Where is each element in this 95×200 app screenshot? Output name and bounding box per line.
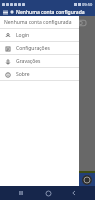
staticText: Nenhuma conta configurada bbox=[4, 19, 72, 26]
button[interactable]: Recents bbox=[16, 188, 26, 198]
staticText: Gravações bbox=[16, 58, 41, 65]
staticText: Configurações bbox=[16, 45, 50, 52]
button[interactable]: Sobre bbox=[0, 68, 79, 80]
staticText: Sobre bbox=[16, 71, 30, 78]
button[interactable]: Gravações bbox=[0, 55, 79, 67]
staticText: Nenhuma conta configurada bbox=[16, 9, 85, 16]
button[interactable]: Home bbox=[43, 188, 53, 198]
button[interactable]: Nenhuma conta configurada bbox=[0, 16, 79, 28]
button[interactable]: Chat bbox=[82, 175, 92, 185]
staticText: 09:50 bbox=[82, 2, 93, 7]
button[interactable]: Login bbox=[0, 29, 79, 41]
button[interactable]: Sair bbox=[0, 173, 95, 186]
button[interactable]: Back bbox=[69, 188, 79, 198]
button[interactable]: Configurações bbox=[0, 42, 79, 54]
button[interactable]: Open navigation drawer bbox=[2, 9, 8, 15]
staticText: Login bbox=[16, 32, 30, 39]
button[interactable]: Camera bbox=[76, 18, 90, 28]
